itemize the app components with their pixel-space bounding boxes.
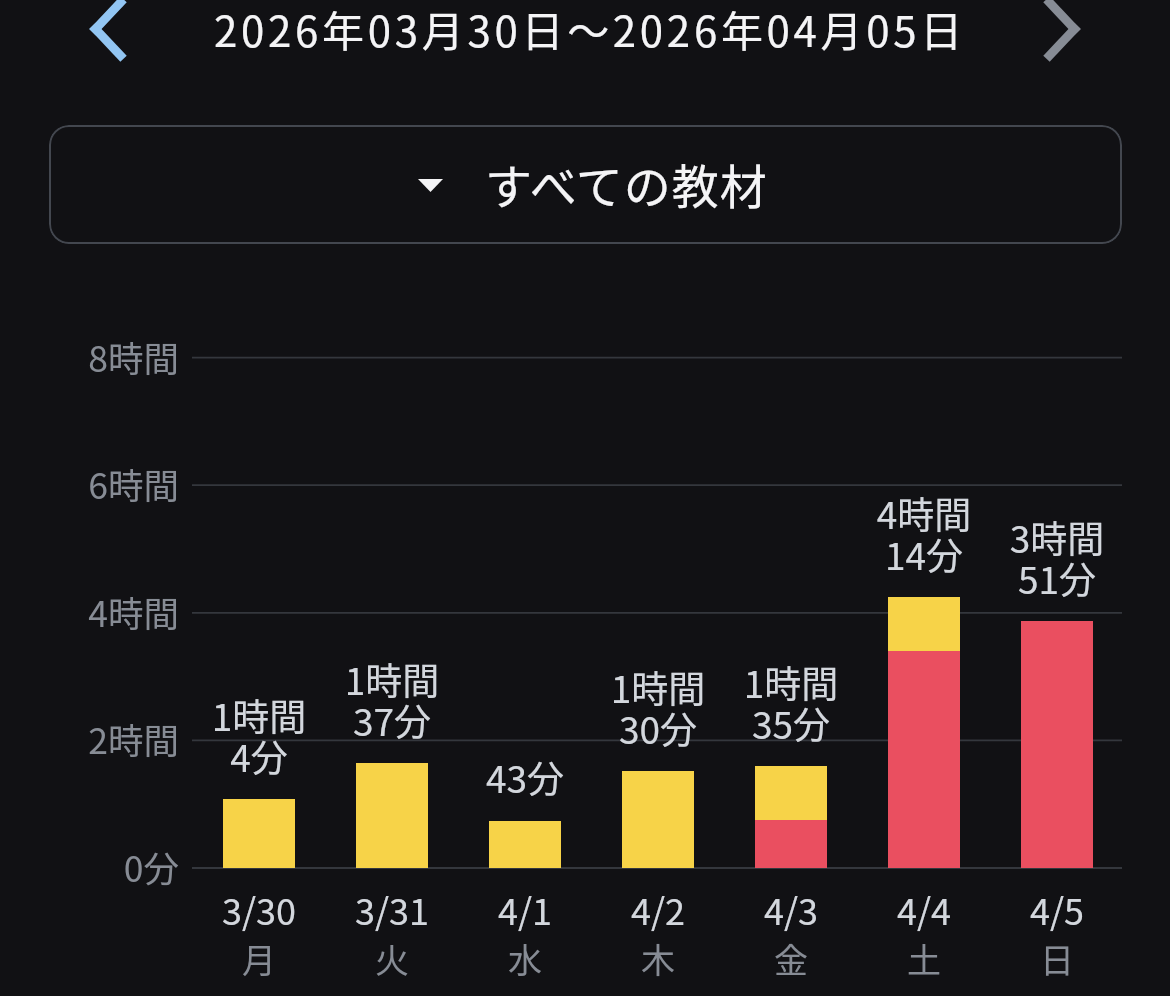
staticText: 4時間 14分: [854, 486, 994, 581]
button[interactable]: Previous week: [66, 0, 150, 71]
staticText: 1時間 35分: [721, 655, 861, 750]
staticText: 4/2: [588, 883, 728, 935]
staticText: 0分: [1, 841, 179, 892]
staticText: 水: [455, 934, 595, 983]
staticText: 4/1: [455, 883, 595, 935]
button[interactable]: Next week: [1020, 0, 1104, 71]
staticText: 43分: [455, 750, 595, 804]
staticText: 土: [854, 934, 994, 983]
staticText: 8時間: [1, 331, 179, 382]
staticText: 4時間: [1, 586, 179, 637]
staticText: 日: [987, 934, 1127, 983]
staticText: 2時間: [1, 713, 179, 764]
staticText: 4/3: [721, 883, 861, 935]
staticText: 4/4: [854, 883, 994, 935]
staticText: 1時間 37分: [322, 652, 462, 747]
button[interactable]: すべての教材: [49, 125, 1122, 244]
staticText: 木: [588, 934, 728, 983]
staticText: 3時間 51分: [987, 510, 1127, 605]
staticText: 火: [322, 934, 462, 983]
staticText: 6時間: [1, 458, 179, 509]
staticText: 2026年03月30日～2026年04月05日: [5, 0, 1170, 59]
staticText: 1時間 4分: [189, 688, 329, 783]
staticText: 月: [189, 934, 329, 983]
staticText: すべての教材: [485, 149, 768, 217]
staticText: 金: [721, 934, 861, 983]
staticText: 1時間 30分: [588, 660, 728, 755]
staticText: 3/31: [322, 883, 462, 935]
staticText: 3/30: [189, 883, 329, 935]
staticText: 4/5: [987, 883, 1127, 935]
